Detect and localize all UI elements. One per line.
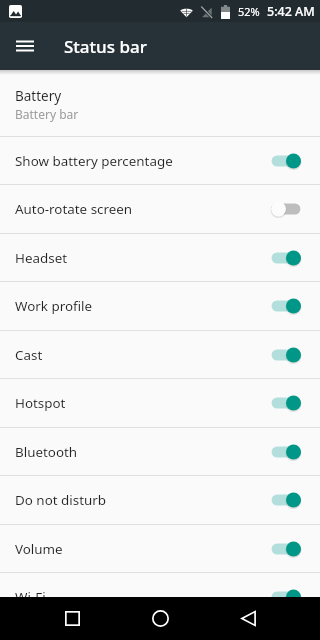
button[interactable]: Bluetooth xyxy=(0,428,320,475)
button[interactable]: Recent apps xyxy=(48,597,96,640)
staticText: Hotspot xyxy=(15,394,271,412)
staticText: Status bar xyxy=(64,35,147,58)
button[interactable]: Work profile xyxy=(0,282,320,330)
staticText: Headset xyxy=(15,249,271,267)
button[interactable]: Back xyxy=(224,597,272,640)
button[interactable]: Auto-rotate screen xyxy=(0,185,320,233)
staticText: Show battery percentage xyxy=(15,152,271,170)
staticText: 52% xyxy=(238,4,260,19)
button[interactable]: Cast xyxy=(0,331,320,378)
button[interactable]: Show battery percentage xyxy=(0,137,320,184)
staticText: Do not disturb xyxy=(15,491,271,509)
staticText: Bluetooth xyxy=(15,443,271,461)
button[interactable]: Open navigation menu xyxy=(5,26,45,66)
staticText: Battery bar xyxy=(15,106,79,122)
button[interactable]: Wi-Fi xyxy=(0,573,320,597)
button[interactable]: Do not disturb xyxy=(0,476,320,524)
button[interactable]: Volume xyxy=(0,525,320,572)
staticText: Cast xyxy=(15,346,271,364)
staticText: Wi-Fi xyxy=(15,588,271,597)
staticText: Battery xyxy=(15,87,62,105)
staticText: Work profile xyxy=(15,297,271,315)
staticText: Auto-rotate screen xyxy=(15,200,271,218)
button[interactable]: Headset xyxy=(0,234,320,281)
button[interactable]: Hotspot xyxy=(0,379,320,427)
button[interactable]: Home xyxy=(136,597,184,640)
staticText: Volume xyxy=(15,540,271,558)
staticText: 5:42 AM xyxy=(267,3,315,20)
